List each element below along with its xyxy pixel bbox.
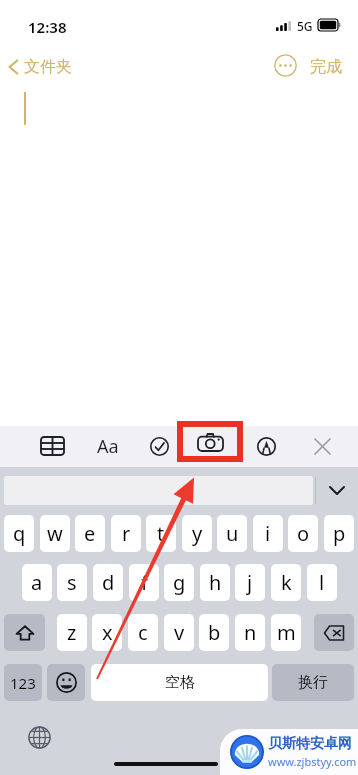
button[interactable]: [4, 476, 313, 505]
staticText: 贝斯特安卓网: [268, 735, 352, 753]
button[interactable]: g: [164, 564, 194, 601]
staticText: 5G: [297, 18, 313, 34]
staticText: a: [31, 569, 43, 596]
button[interactable]: Markup: [249, 429, 283, 463]
button[interactable]: l: [307, 564, 337, 601]
button[interactable]: v: [164, 614, 194, 651]
button[interactable]: 空格: [91, 664, 268, 701]
staticText: 123: [10, 673, 36, 693]
button[interactable]: x: [92, 614, 122, 651]
staticText: l: [319, 569, 325, 596]
button[interactable]: o: [288, 515, 318, 552]
staticText: c: [138, 619, 148, 646]
staticText: www.zjbstyy.com: [268, 754, 357, 769]
staticText: e: [84, 520, 96, 547]
button[interactable]: u: [217, 515, 247, 552]
staticText: 空格: [165, 673, 195, 692]
button[interactable]: Hide candidates: [320, 476, 354, 505]
button[interactable]: s: [57, 564, 87, 601]
button[interactable]: 文件夹: [8, 54, 72, 80]
staticText: v: [174, 619, 185, 646]
staticText: b: [208, 619, 221, 646]
button[interactable]: e: [75, 515, 105, 552]
button[interactable]: Emoji: [47, 664, 85, 701]
button[interactable]: Shift: [4, 614, 45, 651]
staticText: d: [102, 569, 115, 596]
button[interactable]: More options: [274, 54, 297, 77]
staticText: z: [67, 619, 77, 646]
button[interactable]: z: [57, 614, 87, 651]
staticText: j: [247, 569, 253, 596]
button[interactable]: Aa: [91, 429, 125, 463]
button[interactable]: Camera: [177, 421, 243, 462]
staticText: g: [173, 569, 186, 596]
staticText: Aa: [97, 434, 119, 459]
staticText: h: [209, 569, 222, 596]
button[interactable]: f: [129, 564, 159, 601]
button[interactable]: p: [324, 515, 354, 552]
staticText: 12:38: [28, 17, 67, 37]
button[interactable]: n: [235, 614, 265, 651]
staticText: s: [67, 569, 77, 596]
button[interactable]: Change keyboard language: [25, 723, 53, 751]
staticText: p: [333, 520, 346, 547]
button[interactable]: h: [200, 564, 230, 601]
staticText: 文件夹: [24, 57, 72, 77]
staticText: n: [244, 619, 257, 646]
button[interactable]: Close keyboard: [305, 429, 339, 463]
button[interactable]: 123: [4, 664, 42, 701]
button[interactable]: r: [111, 515, 141, 552]
button[interactable]: k: [271, 564, 301, 601]
staticText: f: [141, 569, 148, 596]
staticText: x: [102, 619, 113, 646]
staticText: y: [192, 520, 203, 547]
staticText: w: [47, 520, 63, 547]
button[interactable]: w: [40, 515, 70, 552]
button[interactable]: y: [182, 515, 212, 552]
staticText: t: [157, 520, 165, 547]
button[interactable]: 换行: [272, 664, 354, 701]
staticText: i: [265, 520, 271, 547]
button[interactable]: a: [22, 564, 52, 601]
staticText: 换行: [298, 673, 328, 692]
staticText: o: [297, 520, 310, 547]
button[interactable]: c: [128, 614, 158, 651]
button[interactable]: i: [253, 515, 283, 552]
staticText: m: [277, 619, 296, 646]
button[interactable]: Table: [35, 429, 69, 463]
button[interactable]: b: [199, 614, 229, 651]
button[interactable]: Checklist: [142, 429, 176, 463]
button[interactable]: d: [93, 564, 123, 601]
staticText: k: [281, 569, 292, 596]
button[interactable]: q: [4, 515, 34, 552]
button[interactable]: Backspace: [314, 614, 354, 651]
button[interactable]: 完成: [310, 57, 342, 77]
button[interactable]: j: [235, 564, 265, 601]
staticText: u: [226, 520, 239, 547]
button[interactable]: t: [146, 515, 176, 552]
staticText: q: [13, 520, 26, 547]
button[interactable]: m: [271, 614, 301, 651]
staticText: r: [122, 520, 131, 547]
